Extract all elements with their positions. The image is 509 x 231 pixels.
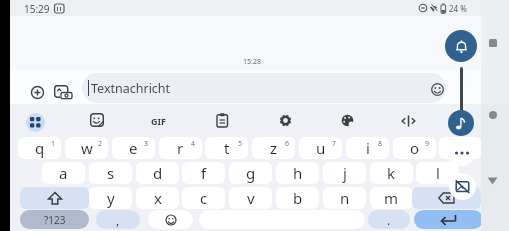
button[interactable] — [414, 210, 483, 229]
button[interactable]: w — [65, 137, 108, 159]
button[interactable] — [20, 187, 89, 209]
button[interactable]: v — [229, 187, 272, 209]
staticText: n — [340, 188, 350, 208]
button[interactable] — [431, 83, 444, 96]
staticText: 5 — [238, 139, 243, 149]
button[interactable]: k — [370, 162, 413, 184]
button[interactable]: a — [42, 162, 85, 184]
button[interactable]: i — [346, 137, 389, 159]
button[interactable] — [148, 210, 193, 229]
button[interactable]: s — [89, 162, 132, 184]
button[interactable]: e — [112, 137, 155, 159]
button[interactable]: u — [299, 137, 342, 159]
button[interactable] — [216, 113, 229, 128]
staticText: j — [343, 163, 347, 183]
staticText: 6 — [285, 139, 290, 149]
staticText: v — [247, 188, 255, 208]
button[interactable]: r — [159, 137, 202, 159]
button[interactable] — [445, 30, 477, 62]
staticText: 3 — [144, 139, 149, 149]
staticText: 7 — [332, 139, 337, 149]
button[interactable] — [401, 115, 416, 127]
staticText: r — [177, 138, 184, 158]
button[interactable] — [449, 173, 476, 200]
button[interactable]: l — [416, 162, 459, 184]
staticText: 1 — [51, 139, 56, 149]
button[interactable]: t — [205, 137, 248, 159]
staticText: 24 % — [449, 3, 467, 14]
staticText: 4 — [191, 139, 196, 149]
staticText: h — [293, 163, 303, 183]
staticText: a — [59, 163, 68, 183]
button[interactable]: n — [323, 187, 366, 209]
button[interactable]: , — [96, 210, 140, 229]
staticText: s — [107, 163, 115, 183]
staticText: f — [201, 163, 207, 183]
button[interactable] — [489, 111, 497, 119]
button[interactable] — [448, 110, 474, 136]
button[interactable] — [341, 114, 354, 127]
button[interactable] — [54, 85, 73, 99]
staticText: b — [293, 188, 303, 208]
button[interactable]: f — [182, 162, 225, 184]
staticText: o — [410, 138, 420, 158]
button[interactable]: j — [323, 162, 366, 184]
button[interactable]: x — [136, 187, 179, 209]
button[interactable] — [279, 114, 292, 127]
staticText: w — [81, 138, 93, 158]
staticText: 15:29 — [24, 2, 50, 16]
button[interactable]: GIF — [144, 114, 172, 127]
button[interactable] — [412, 187, 481, 209]
button[interactable] — [448, 139, 475, 166]
staticText: y — [107, 188, 115, 208]
staticText: m — [384, 188, 399, 208]
staticText: z — [270, 138, 278, 158]
staticText: c — [200, 188, 208, 208]
staticText: 2 — [98, 139, 103, 149]
staticText: k — [387, 163, 396, 183]
button[interactable]: b — [276, 187, 319, 209]
button[interactable] — [26, 113, 45, 132]
button[interactable] — [90, 113, 104, 127]
button[interactable]: g — [229, 162, 272, 184]
staticText: u — [316, 138, 326, 158]
staticText: GIF — [151, 115, 166, 127]
staticText: i — [366, 138, 370, 158]
staticText: g — [246, 163, 256, 183]
staticText: e — [129, 138, 138, 158]
button[interactable] — [31, 86, 44, 99]
staticText: ?123 — [44, 213, 66, 227]
button[interactable]: c — [182, 187, 225, 209]
staticText: q — [35, 138, 45, 158]
button[interactable]: . — [368, 210, 410, 229]
button[interactable]: z — [252, 137, 295, 159]
button[interactable]: m — [370, 187, 413, 209]
staticText: 9 — [425, 139, 430, 149]
staticText: 15:28 — [243, 57, 261, 67]
staticText: . — [387, 212, 391, 228]
button[interactable]: d — [136, 162, 179, 184]
button[interactable] — [439, 137, 482, 159]
button[interactable]: h — [276, 162, 319, 184]
button[interactable] — [487, 177, 498, 186]
button[interactable]: q — [18, 137, 61, 159]
staticText: x — [154, 188, 162, 208]
button[interactable]: ?123 — [20, 210, 89, 229]
button[interactable]: Textnachricht — [82, 73, 446, 103]
staticText: l — [436, 163, 440, 183]
staticText: , — [116, 212, 120, 228]
staticText: t — [224, 138, 230, 158]
button[interactable]: o — [393, 137, 436, 159]
button[interactable]: y — [89, 187, 132, 209]
button[interactable] — [489, 39, 497, 47]
staticText: d — [153, 163, 163, 183]
staticText: Textnachricht — [91, 80, 171, 97]
staticText: 8 — [378, 139, 383, 149]
